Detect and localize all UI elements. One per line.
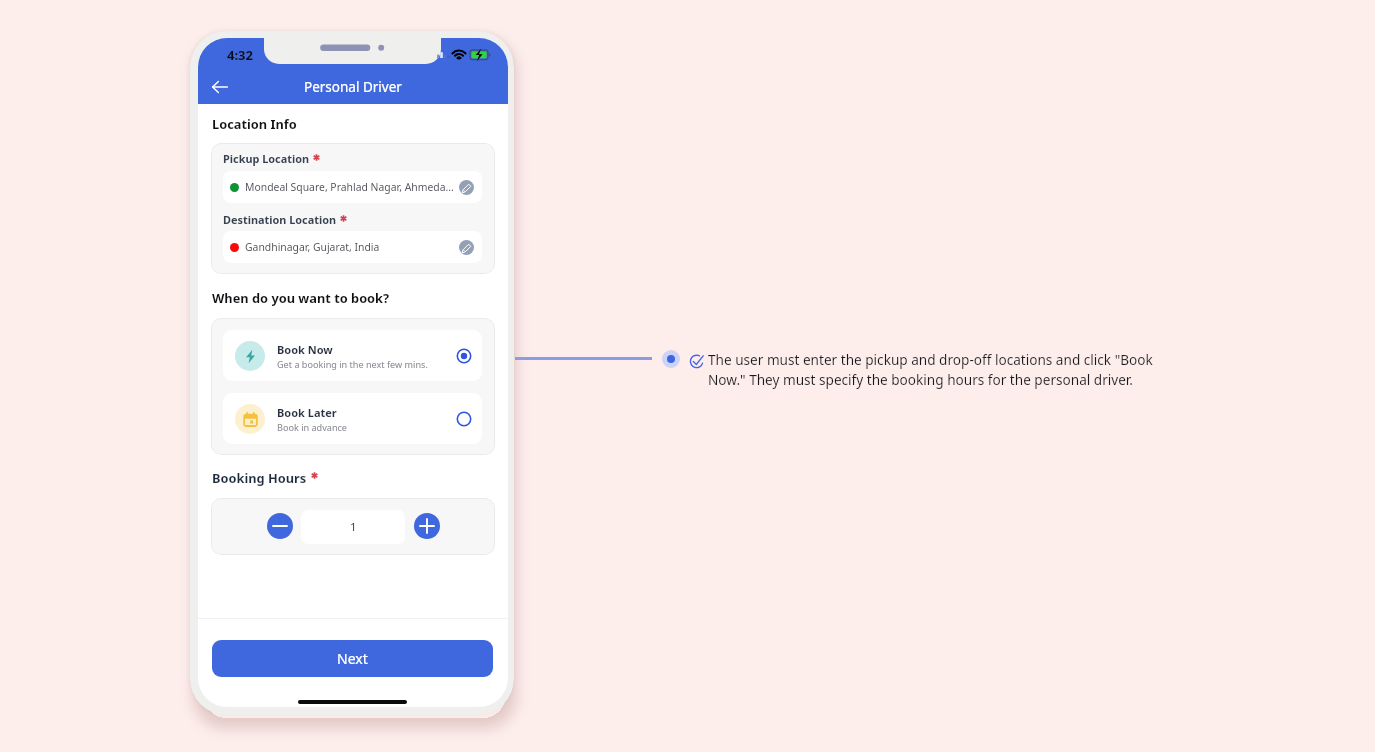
staticText: Book Now [277,342,333,357]
button[interactable]: Edit location [459,180,474,195]
button[interactable]: Mondeal Square, Prahlad Nagar, Ahmeda... [223,171,482,203]
staticText: Pickup Location [223,151,310,166]
staticText: Next [337,649,368,668]
staticText: The user must enter the pickup and drop-… [708,350,1156,389]
staticText: Destination Location [223,212,337,227]
staticText: Gandhinagar, Gujarat, India [245,240,457,254]
button[interactable]: Gandhinagar, Gujarat, India [223,231,482,263]
staticText: When do you want to book? [212,289,390,306]
button[interactable]: Back [203,73,237,101]
button[interactable]: Selected [456,348,472,364]
button[interactable]: Decrease hours [267,513,293,539]
button[interactable]: Not selected [456,411,472,427]
staticText: Mondeal Square, Prahlad Nagar, Ahmeda... [245,180,457,194]
button[interactable]: Increase hours [414,513,440,539]
staticText: Location Info [212,115,297,132]
button[interactable]: Book Now [223,330,482,381]
button[interactable]: Book Later [223,393,482,444]
staticText: Book Later [277,405,337,420]
button[interactable]: Edit location [459,240,474,255]
staticText: 4:32 [227,46,253,64]
staticText: Get a booking in the next few mins. [277,358,428,370]
button[interactable]: 1 [301,510,405,544]
staticText: Book in advance [277,421,347,433]
staticText: 1 [350,519,357,535]
button[interactable]: Next [212,640,493,677]
staticText: Booking Hours [212,469,307,486]
staticText: Personal Driver [304,78,402,96]
